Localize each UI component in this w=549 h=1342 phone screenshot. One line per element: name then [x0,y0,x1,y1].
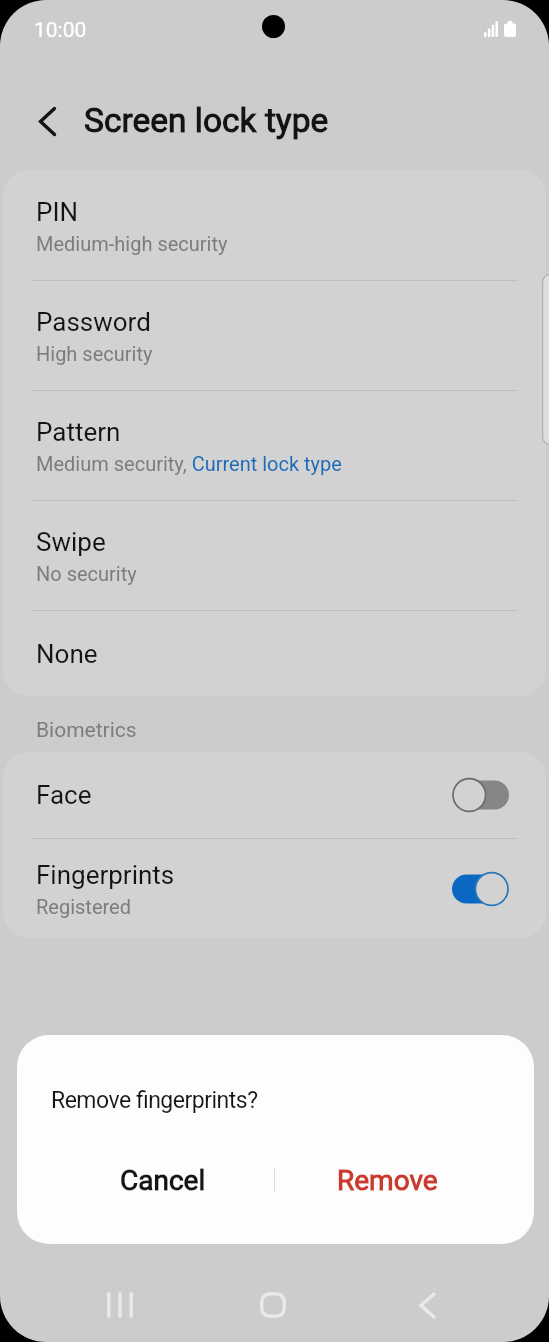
staticText: Swipe [36,527,106,557]
button[interactable]: Face [3,752,546,838]
button[interactable]: Off [452,777,509,813]
staticText: Screen lock type [84,101,329,140]
button[interactable]: Recent apps [84,1269,156,1341]
button[interactable]: Back [391,1269,463,1341]
staticText: High security [36,342,153,365]
staticText: Face [36,780,92,810]
button[interactable]: Remove [281,1145,493,1215]
button[interactable]: Swipe [3,501,546,610]
button[interactable]: Fingerprints [3,839,546,938]
button[interactable]: Password [3,281,546,390]
staticText: Remove fingerprints? [51,1087,258,1114]
staticText: Registered [36,895,131,918]
staticText: Medium-high security [36,232,228,255]
staticText: Password [36,307,151,337]
staticText: PIN [36,197,79,227]
staticText: Medium security, Current lock type [36,452,342,475]
staticText: No security [36,562,137,585]
staticText: Remove [337,1164,438,1197]
button[interactable]: Pattern [3,391,546,500]
button[interactable]: Home [237,1269,309,1341]
button[interactable]: Back [21,95,73,147]
staticText: 10:00 [34,18,87,43]
staticText: Pattern [36,417,121,447]
button[interactable]: Cancel [57,1145,269,1215]
staticText: Biometrics [36,718,137,743]
button[interactable]: On [452,871,509,907]
button[interactable]: None [3,611,546,696]
staticText: Cancel [120,1164,206,1197]
staticText: Fingerprints [36,860,175,890]
button[interactable]: PIN [3,170,546,280]
staticText: None [36,639,98,669]
